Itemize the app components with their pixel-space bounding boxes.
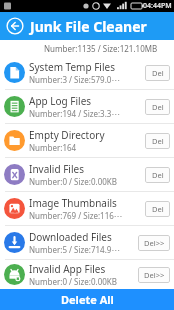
staticText: Number:5 / Size:714.9⋯ [29,244,120,255]
staticText: Invalid Files [29,162,84,176]
button[interactable]: App Log Files [0,90,174,123]
staticText: Del>> [144,238,165,248]
staticText: Del [152,68,164,78]
button[interactable]: Del [145,133,170,149]
staticText: Number:194 / Size:3.3⋯ [29,108,120,119]
button[interactable]: Del [145,65,170,81]
staticText: Number:1135 / Size:121.10MB [44,43,158,54]
staticText: Junk File Cleaner [30,17,147,36]
button[interactable]: Del [145,167,170,183]
staticText: Number:164 [29,142,77,153]
button[interactable]: Image Thumbnails [0,192,174,225]
staticText: Number:0 / Size:0.00KB [29,176,117,187]
staticText: Del [152,102,164,112]
staticText: Delete All [61,292,114,307]
staticText: Invalid App Files [29,262,106,276]
button[interactable]: Invalid Files [0,158,174,191]
button[interactable]: Invalid App Files [0,260,174,289]
staticText: Number:769 / Size:116⋯ [29,210,122,221]
staticText: Number:0 / Size:0.00KB [29,276,117,287]
staticText: App Log Files [29,94,92,108]
button[interactable]: Delete All [0,289,174,310]
button[interactable]: Del [145,99,170,115]
button[interactable]: Back [5,16,25,36]
button[interactable]: System Temp Files [0,56,174,89]
staticText: Number:3 / Size:579.0⋯ [29,74,120,85]
button[interactable]: Del>> [138,235,170,251]
button[interactable]: Del>> [138,267,170,283]
staticText: Empty Directory [29,128,105,142]
button[interactable]: Del [145,201,170,217]
staticText: Del [152,170,164,180]
staticText: Del [152,136,164,146]
button[interactable]: Downloaded Files [0,226,174,259]
staticText: Downloaded Files [29,230,112,244]
button[interactable]: Empty Directory [0,124,174,157]
staticText: Image Thumbnails [29,196,117,210]
staticText: 04:44PM [143,1,172,11]
staticText: Del [152,204,164,214]
staticText: Del>> [144,270,165,280]
staticText: System Temp Files [29,60,115,74]
